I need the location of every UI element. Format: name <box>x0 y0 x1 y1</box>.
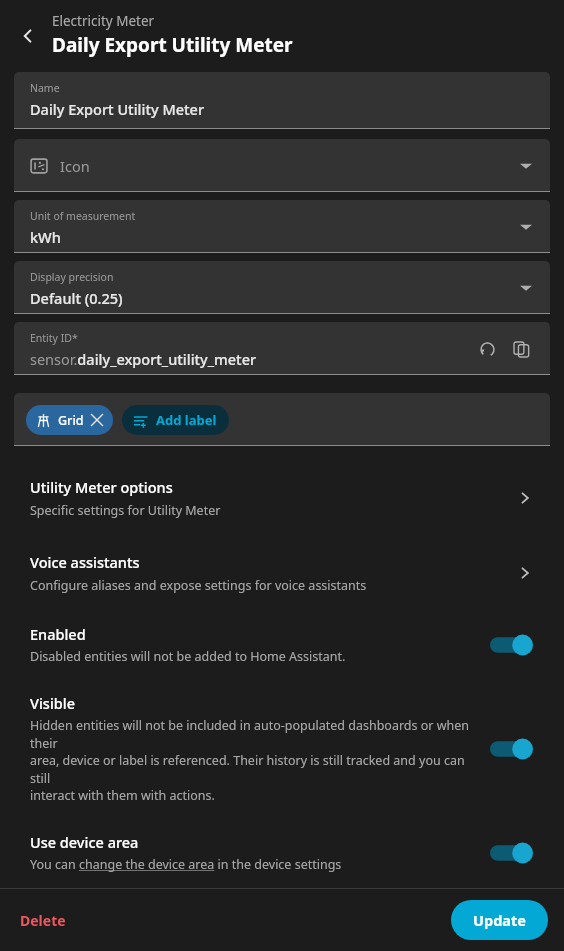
staticText: Daily Export Utility Meter <box>30 99 205 119</box>
staticText: Hidden entities will not be included in … <box>30 717 478 752</box>
staticText: Enabled <box>30 624 86 644</box>
button[interactable] <box>490 840 534 866</box>
button[interactable]: Update <box>451 900 548 940</box>
button[interactable]: Enabled <box>0 610 564 679</box>
staticText: sensor.daily_export_utility_meter <box>30 349 257 369</box>
button[interactable]: Back <box>8 16 48 56</box>
button[interactable]: Add label <box>122 405 229 435</box>
staticText: interact with them with actions. <box>30 787 215 804</box>
button[interactable]: Unit of measurement <box>14 200 550 253</box>
staticText: Configure aliases and expose settings fo… <box>30 577 367 594</box>
button[interactable]: Icon <box>14 139 550 192</box>
button[interactable]: Use device area <box>0 818 564 887</box>
staticText: Voice assistants <box>30 552 140 572</box>
button[interactable]: Display precision <box>14 261 550 314</box>
staticText: Unit of measurement <box>30 209 136 223</box>
button[interactable]: Copy entity ID <box>504 332 538 366</box>
staticText: Update <box>473 910 526 930</box>
staticText: kWh <box>30 227 61 247</box>
button[interactable]: Entity ID* <box>14 322 550 375</box>
staticText: Delete <box>20 911 66 930</box>
staticText: Electricity Meter <box>52 12 155 30</box>
button[interactable]: Reset entity ID <box>470 332 504 366</box>
staticText: Display precision <box>30 270 114 284</box>
staticText: Visible <box>30 693 76 713</box>
button[interactable]: Name <box>14 72 550 129</box>
button[interactable] <box>490 632 534 658</box>
button[interactable]: Visible <box>0 679 564 818</box>
button[interactable]: Voice assistants <box>0 535 564 610</box>
staticText: Disabled entities will not be added to H… <box>30 648 346 665</box>
staticText: Default (0.25) <box>30 288 123 308</box>
staticText: Name <box>30 81 60 95</box>
button[interactable]: Grid <box>14 393 550 446</box>
staticText: Icon <box>60 156 90 176</box>
button[interactable]: Delete <box>10 903 76 938</box>
staticText: Use device area <box>30 832 139 852</box>
staticText: Utility Meter options <box>30 477 173 497</box>
button[interactable]: Utility Meter options <box>0 460 564 535</box>
staticText: Grid <box>58 412 84 429</box>
staticText: Entity ID* <box>30 331 78 345</box>
staticText: Specific settings for Utility Meter <box>30 502 221 519</box>
staticText: You can change the device area in the de… <box>30 856 342 873</box>
button[interactable]: Grid <box>26 405 113 435</box>
staticText: area, device or label is referenced. The… <box>30 752 478 787</box>
button[interactable] <box>490 736 534 762</box>
staticText: Add label <box>156 411 217 429</box>
staticText: Daily Export Utility Meter <box>52 32 293 58</box>
